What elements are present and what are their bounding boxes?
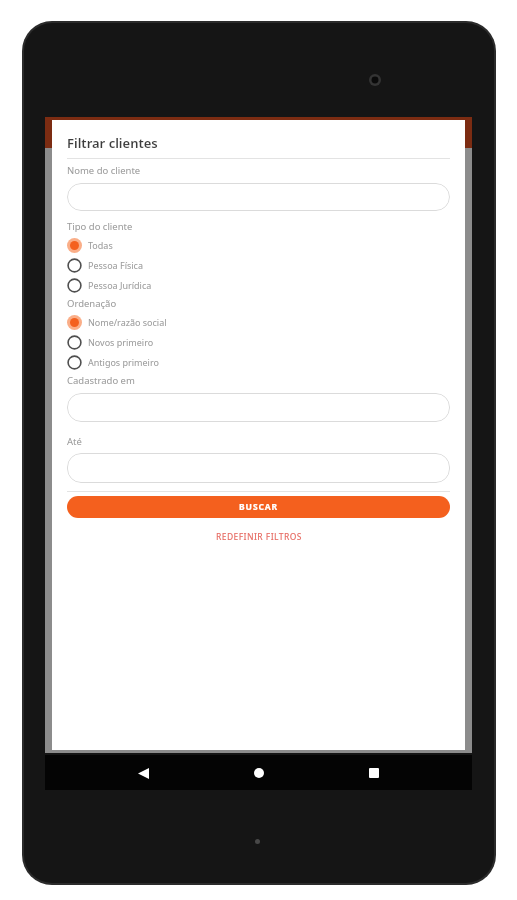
button[interactable] [67,183,450,211]
staticText: Novos primeiro [88,336,154,348]
button[interactable]: Back [126,756,160,790]
staticText: Filtrar clientes [67,134,158,152]
button[interactable]: Antigos primeiro [67,352,450,372]
button[interactable]: Todas [67,235,450,255]
button[interactable]: Home [242,756,276,790]
staticText: BUSCAR [239,501,279,513]
staticText: Todas [88,239,113,251]
staticText: REDEFINIR FILTROS [216,531,302,543]
button[interactable] [67,393,450,422]
staticText: Nome/razão social [88,316,167,328]
staticText: Ordenação [67,297,117,310]
staticText: Pessoa Física [88,259,143,271]
button[interactable]: Nome/razão social [67,312,450,332]
staticText: Antigos primeiro [88,356,159,368]
button[interactable]: BUSCAR [67,496,450,518]
staticText: Pessoa Jurídica [88,279,152,291]
button[interactable]: Pessoa Física [67,255,450,275]
staticText: Até [67,435,82,448]
button[interactable]: Recent apps [357,756,391,790]
button[interactable] [67,453,450,483]
staticText: Cadastrado em [67,374,135,387]
button[interactable]: Pessoa Jurídica [67,275,450,295]
staticText: Nome do cliente [67,164,141,177]
button[interactable]: Novos primeiro [67,332,450,352]
button[interactable]: REDEFINIR FILTROS [67,529,450,545]
staticText: Tipo do cliente [67,220,133,233]
